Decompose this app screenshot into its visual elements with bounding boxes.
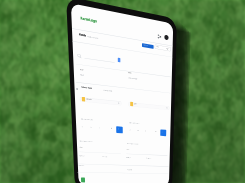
button[interactable]: My Field xyxy=(78,96,122,105)
button[interactable]: Year 2020 xyxy=(155,45,171,53)
button[interactable]: Soil xyxy=(126,101,170,110)
button[interactable]: Share xyxy=(156,33,163,40)
button[interactable]: Add field xyxy=(141,43,154,51)
button[interactable]: Select acres unit xyxy=(114,126,124,136)
button[interactable]: Select acres unit xyxy=(162,131,172,141)
button[interactable]: Account xyxy=(163,34,171,42)
